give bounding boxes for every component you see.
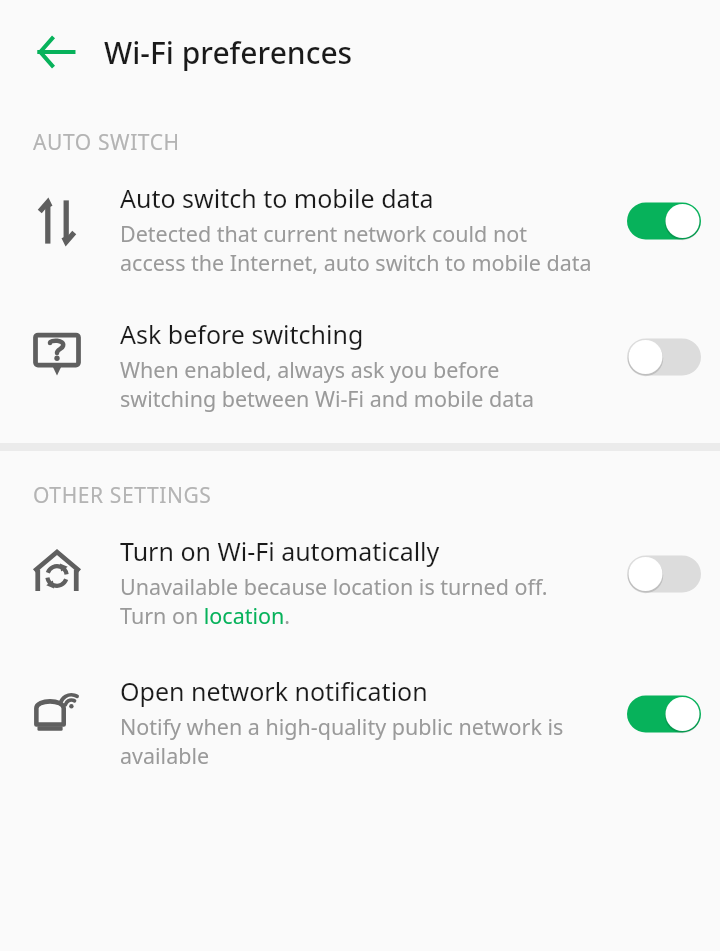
button[interactable]: Turn on Wi-Fi automatically bbox=[0, 520, 720, 634]
staticText: Turn on Wi-Fi automatically bbox=[120, 534, 440, 568]
staticText: AUTO SWITCH bbox=[33, 128, 180, 157]
staticText: When enabled, always ask you before swit… bbox=[120, 355, 596, 413]
button[interactable]: Turn on Wi-Fi automatically off bbox=[623, 550, 705, 598]
button[interactable]: Auto switch to mobile data bbox=[0, 167, 720, 281]
staticText: Ask before switching bbox=[120, 317, 364, 351]
button[interactable]: Ask before switching off bbox=[623, 333, 705, 381]
staticText: OTHER SETTINGS bbox=[33, 481, 212, 510]
staticText: Detected that current network could not … bbox=[120, 219, 596, 277]
staticText: Notify when a high-quality public networ… bbox=[120, 712, 596, 770]
staticText: Unavailable because location is turned o… bbox=[120, 572, 596, 630]
button[interactable]: Open network notification on bbox=[623, 690, 705, 738]
staticText: Open network notification bbox=[120, 674, 428, 708]
staticText: Wi-Fi preferences bbox=[104, 32, 353, 73]
button[interactable]: Auto switch to mobile data on bbox=[623, 197, 705, 245]
staticText: Auto switch to mobile data bbox=[120, 181, 434, 215]
button[interactable]: Ask before switching bbox=[0, 303, 720, 417]
button[interactable]: Back bbox=[20, 16, 92, 88]
button[interactable]: Open network notification bbox=[0, 660, 720, 774]
